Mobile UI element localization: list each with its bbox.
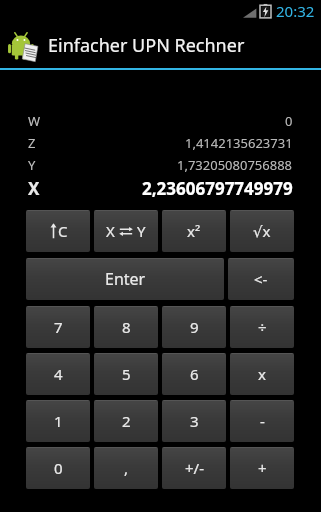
button[interactable]: Function key	[26, 210, 90, 252]
button[interactable]: Function key	[94, 210, 158, 252]
staticText: 5	[122, 364, 131, 384]
button[interactable]: ,	[94, 447, 158, 489]
button[interactable]: √x	[230, 210, 294, 252]
staticText: 2,23606797749979	[142, 177, 293, 200]
button[interactable]: 7	[26, 306, 90, 348]
button[interactable]: ÷	[230, 306, 294, 348]
staticText: 1,73205080756888	[177, 156, 293, 174]
staticText: -	[260, 411, 265, 431]
staticText: Z	[28, 134, 36, 152]
staticText: W	[28, 112, 41, 130]
staticText: 0	[285, 112, 293, 130]
staticText: 1,4142135623731	[185, 134, 293, 152]
staticText: Y	[28, 156, 36, 174]
button[interactable]: Enter	[26, 258, 224, 300]
button[interactable]: 2	[94, 400, 158, 442]
button[interactable]: +	[230, 447, 294, 489]
staticText: 3	[190, 411, 199, 431]
staticText: +	[258, 458, 267, 478]
staticText: <-	[254, 269, 268, 289]
button[interactable]: x	[230, 353, 294, 395]
staticText: ,	[124, 458, 129, 478]
button[interactable]: 3	[162, 400, 226, 442]
button[interactable]: +/-	[162, 447, 226, 489]
staticText: 7	[54, 317, 63, 337]
button[interactable]: 0	[26, 447, 90, 489]
staticText: 9	[190, 317, 199, 337]
button[interactable]: x²	[162, 210, 226, 252]
button[interactable]: 6	[162, 353, 226, 395]
staticText: 8	[122, 317, 131, 337]
button[interactable]: <-	[228, 258, 294, 300]
staticText: Einfacher UPN Rechner	[48, 33, 245, 58]
staticText: 6	[190, 364, 199, 384]
staticText: +/-	[185, 458, 204, 478]
staticText: 2	[122, 411, 131, 431]
staticText: C	[58, 221, 68, 241]
staticText: 1	[54, 411, 63, 431]
staticText: X	[106, 221, 115, 241]
staticText: 4	[54, 364, 63, 384]
button[interactable]: 8	[94, 306, 158, 348]
staticText: ÷	[258, 317, 267, 337]
staticText: √x	[253, 221, 271, 241]
staticText: X	[28, 177, 40, 200]
button[interactable]: 5	[94, 353, 158, 395]
staticText: 20:32	[276, 1, 315, 21]
staticText: 0	[54, 458, 63, 478]
button[interactable]: 1	[26, 400, 90, 442]
button[interactable]: 4	[26, 353, 90, 395]
staticText: Y	[137, 221, 146, 241]
button[interactable]: -	[230, 400, 294, 442]
button[interactable]: 9	[162, 306, 226, 348]
staticText: x	[258, 364, 266, 384]
staticText: x²	[187, 221, 201, 241]
staticText: Enter	[105, 268, 146, 290]
